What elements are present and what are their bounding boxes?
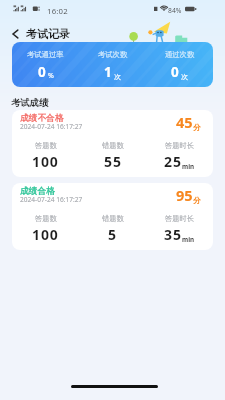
- button[interactable]: 成绩不合格: [12, 110, 213, 177]
- staticText: 0: [38, 63, 47, 81]
- staticText: 次: [181, 72, 188, 81]
- staticText: 答题数: [35, 214, 57, 223]
- staticText: 5: [108, 225, 117, 244]
- staticText: 55: [104, 152, 122, 171]
- staticText: 95: [176, 185, 193, 205]
- staticText: 通过次数: [165, 50, 195, 59]
- staticText: min: [182, 235, 195, 244]
- staticText: 25: [164, 152, 182, 171]
- staticText: 成绩不合格: [20, 113, 64, 124]
- staticText: min: [182, 162, 195, 171]
- staticText: 答题时长: [165, 214, 195, 223]
- staticText: 成绩合格: [20, 186, 55, 197]
- staticText: 次: [114, 72, 121, 81]
- staticText: 35: [164, 225, 182, 244]
- staticText: 100: [32, 152, 59, 171]
- staticText: 错题数: [102, 141, 124, 150]
- staticText: 100: [32, 225, 59, 244]
- staticText: 0: [171, 63, 180, 81]
- button[interactable]: 成绩合格: [12, 183, 213, 250]
- staticText: 45: [176, 112, 193, 132]
- staticText: 1: [104, 63, 113, 81]
- staticText: 2024-07-24 16:17:27: [20, 195, 83, 204]
- staticText: 错题数: [102, 214, 124, 223]
- staticText: 16:02: [47, 6, 68, 17]
- staticText: 2024-07-24 16:17:27: [20, 122, 83, 131]
- staticText: 84%: [168, 6, 182, 15]
- staticText: 考试通过率: [27, 50, 64, 59]
- staticText: 分: [193, 123, 201, 132]
- staticText: 答题时长: [165, 141, 195, 150]
- button[interactable]: Back: [8, 27, 22, 41]
- staticText: 考试成绩: [11, 97, 49, 109]
- staticText: %: [48, 71, 54, 81]
- staticText: 分: [193, 196, 201, 205]
- staticText: 答题数: [35, 141, 57, 150]
- staticText: 考试记录: [26, 27, 70, 41]
- staticText: 考试次数: [98, 50, 128, 59]
